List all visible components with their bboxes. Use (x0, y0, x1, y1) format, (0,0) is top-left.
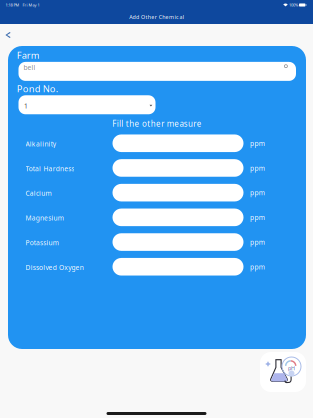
staticText: Dissolved Oxygen (25, 263, 84, 272)
staticText: ppm (250, 139, 265, 148)
staticText: 1:18 PM Fri May 1 (5, 2, 39, 8)
staticText: Total Hardness (25, 164, 74, 173)
button[interactable]: Water test app (260, 352, 306, 392)
button[interactable]: Magnesium (112, 209, 243, 226)
button[interactable]: Alkalinity (112, 134, 243, 152)
staticText: Fill the other measure (112, 118, 202, 129)
staticText: 1 (24, 101, 28, 110)
staticText: Magnesium (25, 214, 64, 222)
staticText: Alkalinity (25, 139, 56, 148)
button[interactable]: bell (18, 62, 296, 81)
staticText: ppm (250, 188, 265, 197)
staticText: Calcium (25, 189, 51, 198)
staticText: Potassium (25, 238, 59, 247)
button[interactable]: Calcium (112, 184, 243, 201)
staticText: ppm (250, 262, 265, 271)
staticText: ppm (250, 213, 265, 222)
staticText: Add Other Chemical (129, 13, 184, 21)
staticText: Farm (17, 49, 40, 61)
staticText: ppm (250, 238, 265, 247)
staticText: 100% (288, 2, 299, 8)
staticText: Pond No. (17, 82, 59, 95)
button[interactable]: Dissolved Oxygen (112, 258, 243, 276)
staticText: pH (288, 365, 295, 372)
button[interactable]: Potassium (112, 233, 243, 251)
button[interactable]: Total Hardness (112, 159, 243, 177)
staticText: ppm (250, 164, 265, 173)
staticText: bell (23, 63, 35, 72)
button[interactable]: Back (0, 27, 16, 43)
button[interactable]: 1 (18, 95, 155, 114)
